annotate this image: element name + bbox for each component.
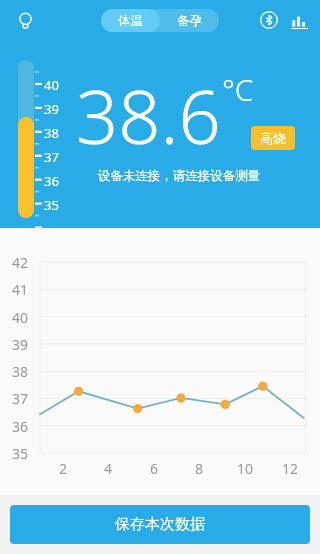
staticText: 10 <box>237 459 254 478</box>
staticText: 39 <box>12 335 29 354</box>
staticText: 37 <box>44 148 59 166</box>
button[interactable]: 备孕 <box>160 9 219 32</box>
staticText: 6 <box>150 459 159 478</box>
staticText: 36 <box>44 172 59 190</box>
staticText: 4 <box>104 459 113 478</box>
button[interactable]: 保存本次数据 <box>10 505 310 544</box>
button[interactable]: Tips <box>8 3 42 37</box>
staticText: 12 <box>282 459 299 478</box>
staticText: 8 <box>195 459 204 478</box>
staticText: 35 <box>44 196 59 214</box>
staticText: 42 <box>12 253 29 272</box>
button[interactable]: Bluetooth <box>254 5 284 35</box>
staticText: 35 <box>12 444 29 463</box>
staticText: 40 <box>12 308 29 327</box>
button[interactable]: History chart <box>284 5 314 35</box>
staticText: 设备未连接，请连接设备测量 <box>74 168 284 184</box>
button[interactable]: 高烧 <box>251 126 295 150</box>
staticText: 41 <box>12 280 29 299</box>
staticText: 保存本次数据 <box>115 515 205 534</box>
staticText: 37 <box>12 389 29 408</box>
staticText: 体温 <box>118 13 143 29</box>
staticText: 36 <box>12 417 29 436</box>
staticText: 40 <box>44 76 59 94</box>
staticText: 38.6 <box>76 65 221 166</box>
staticText: 38 <box>44 124 59 142</box>
staticText: 38 <box>12 362 29 381</box>
staticText: 39 <box>44 100 59 118</box>
staticText: °C <box>222 69 254 110</box>
button[interactable]: 体温 <box>101 9 160 32</box>
staticText: 高烧 <box>260 130 286 146</box>
staticText: 备孕 <box>177 13 202 29</box>
staticText: 2 <box>59 459 68 478</box>
